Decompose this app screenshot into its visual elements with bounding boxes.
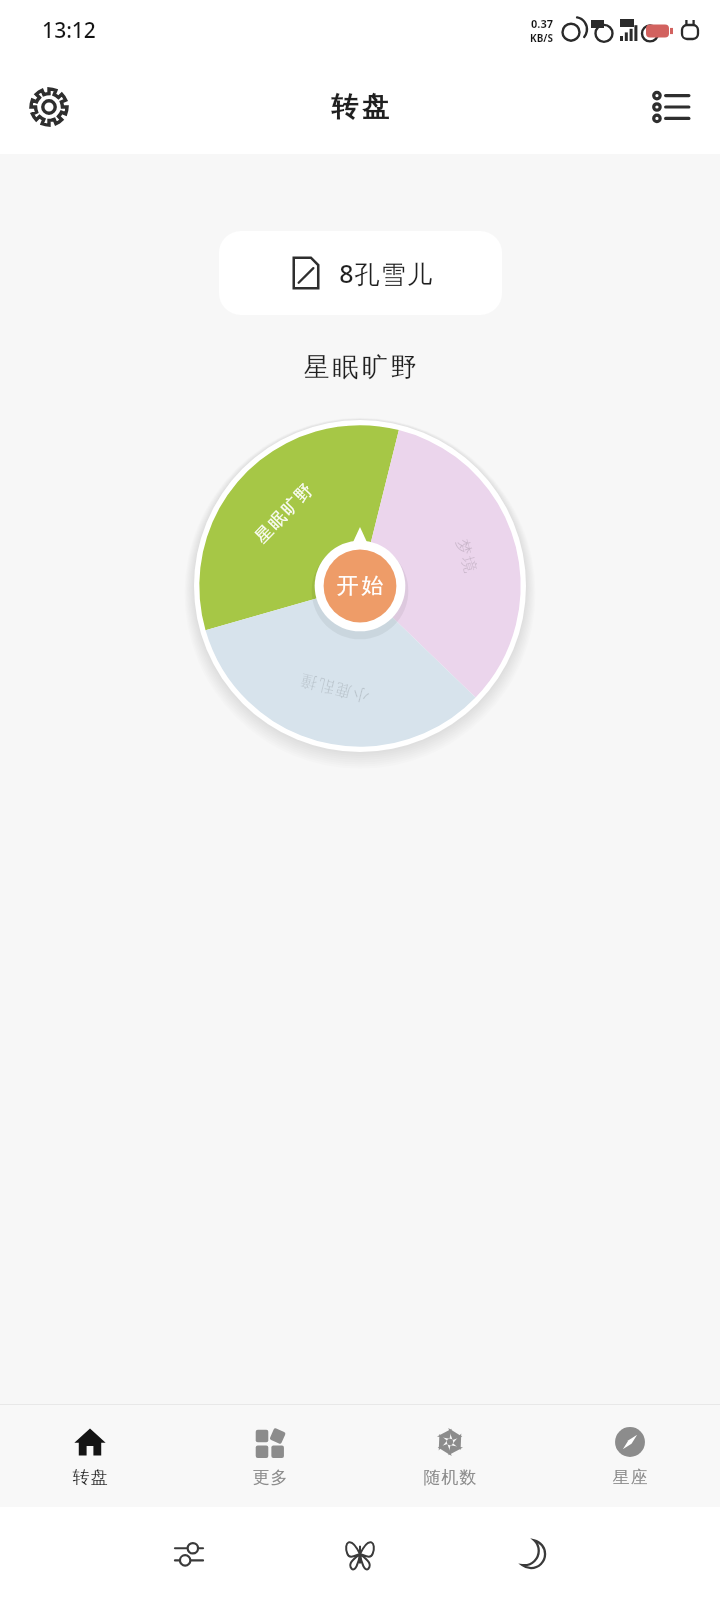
staticText: 随机数 <box>423 1467 477 1488</box>
staticText: KB/S <box>530 31 553 45</box>
button[interactable]: 随机数 <box>360 1405 540 1507</box>
button[interactable]: Settings <box>20 78 78 136</box>
button[interactable]: 8孔雪儿 <box>219 231 502 315</box>
button[interactable]: Butterfly <box>332 1526 388 1582</box>
staticText: 星眠旷野 <box>302 351 418 384</box>
staticText: 0.37 <box>531 16 553 31</box>
staticText: 星眠旷野 <box>250 479 318 548</box>
button[interactable]: 转盘 <box>0 1405 180 1507</box>
button[interactable]: 更多 <box>180 1405 360 1507</box>
staticText: 更多 <box>252 1467 288 1488</box>
staticText: 转盘 <box>329 90 391 124</box>
button[interactable]: Spin wheel <box>194 420 526 752</box>
button[interactable]: 星座 <box>540 1405 720 1507</box>
button[interactable]: Tune <box>161 1526 217 1582</box>
staticText: 小鹿乱撞 <box>298 670 372 706</box>
staticText: 梦境 <box>451 536 480 576</box>
staticText: 转盘 <box>72 1467 108 1488</box>
button[interactable]: Menu <box>642 78 700 136</box>
button[interactable]: Night mode <box>503 1526 559 1582</box>
staticText: 开始 <box>335 572 385 600</box>
staticText: 星座 <box>612 1467 648 1488</box>
staticText: 13:12 <box>42 16 96 45</box>
staticText: 8孔雪儿 <box>339 256 433 290</box>
